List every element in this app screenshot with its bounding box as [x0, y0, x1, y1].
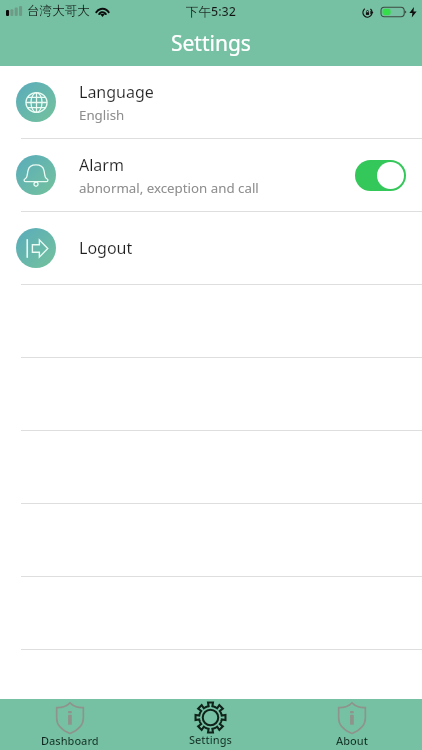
staticText: About	[336, 733, 368, 748]
staticText: English	[79, 106, 125, 124]
button[interactable]: Alarm on	[355, 160, 406, 191]
staticText: Dashboard	[41, 733, 99, 748]
button[interactable]: Dashboard	[0, 699, 140, 750]
staticText: Settings	[189, 732, 232, 747]
button[interactable]: Language	[0, 66, 422, 138]
button[interactable]: About	[281, 699, 422, 750]
staticText: 台湾大哥大	[27, 3, 90, 19]
staticText: Alarm	[79, 154, 124, 176]
button[interactable]: Alarm	[0, 139, 422, 211]
staticText: Settings	[171, 29, 251, 58]
staticText: abnormal, exception and call	[79, 179, 259, 197]
staticText: 下午5:32	[186, 3, 236, 20]
staticText: Logout	[79, 237, 133, 259]
button[interactable]: Settings	[140, 699, 281, 750]
staticText: Language	[79, 81, 154, 103]
button[interactable]: Logout	[0, 212, 422, 284]
